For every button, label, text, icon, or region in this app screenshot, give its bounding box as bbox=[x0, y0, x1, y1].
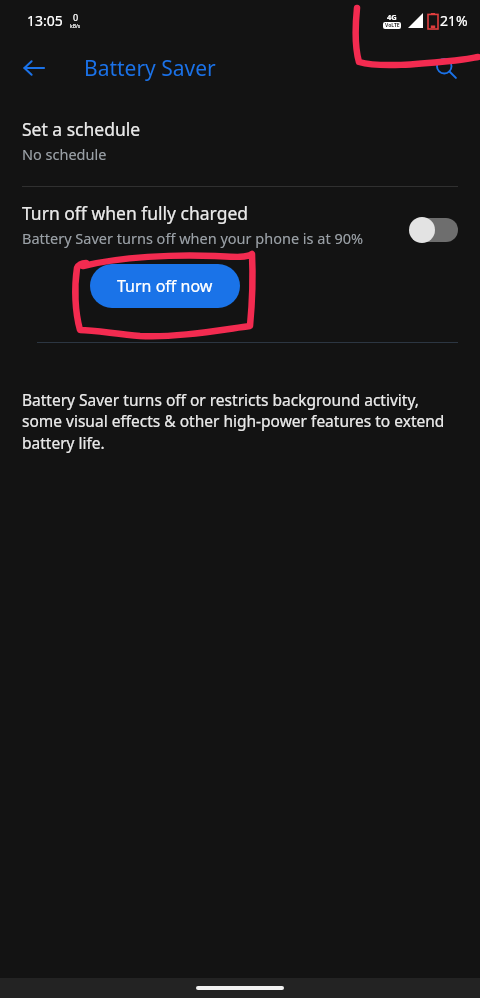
button[interactable]: Back bbox=[10, 44, 58, 92]
staticText: 13:05 bbox=[27, 11, 63, 30]
button[interactable]: Turn off now bbox=[90, 264, 240, 308]
staticText: No schedule bbox=[22, 144, 107, 164]
staticText: 0 bbox=[73, 11, 79, 23]
staticText: Battery Saver turns off or restricts bac… bbox=[22, 389, 456, 454]
staticText: Turn off now bbox=[117, 275, 213, 297]
button[interactable]: Set a schedule bbox=[0, 113, 480, 170]
button[interactable]: Turn off when fully charged bbox=[0, 201, 480, 248]
staticText: Turn off when fully charged bbox=[22, 201, 249, 225]
staticText: Set a schedule bbox=[22, 117, 141, 141]
staticText: Battery Saver turns off when your phone … bbox=[22, 228, 364, 248]
button[interactable]: Turn off when fully charged toggle bbox=[408, 215, 460, 245]
staticText: 21% bbox=[440, 11, 468, 30]
staticText: Battery Saver bbox=[84, 54, 216, 83]
button[interactable]: Search bbox=[422, 44, 470, 92]
staticText: VoLTE bbox=[385, 22, 400, 29]
staticText: 4G bbox=[387, 12, 397, 22]
staticText: kB/s bbox=[70, 23, 81, 30]
